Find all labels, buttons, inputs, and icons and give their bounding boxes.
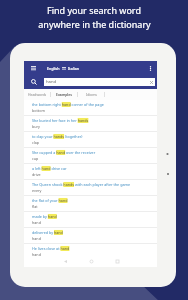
staticText: Headwords [28, 92, 47, 97]
button[interactable]: She buried her face in her hands [24, 116, 157, 132]
button[interactable]: He lives close at hand [24, 244, 157, 256]
button[interactable]: Home [78, 256, 104, 267]
staticText: delivered by hand [32, 230, 63, 235]
staticText: hand [46, 79, 57, 85]
button[interactable]: Search [24, 75, 44, 89]
staticText: the flat of your hand [32, 198, 68, 203]
staticText: made by hand [32, 214, 57, 219]
button[interactable]: Back [52, 256, 78, 267]
button[interactable]: Recent apps [104, 256, 130, 267]
staticText: He lives close at hand [32, 246, 70, 251]
button[interactable]: the bottom right hand corner of the page [24, 100, 157, 116]
staticText: Find your search word [47, 4, 141, 16]
button[interactable]: Headwords [24, 89, 51, 100]
staticText: a left hand drive car [32, 166, 67, 171]
staticText: The Queen shook hands with each player a… [32, 182, 131, 187]
staticText: flat [32, 204, 38, 209]
button[interactable]: She cupped a hand over the receiver [24, 148, 157, 164]
staticText: hand [32, 252, 41, 256]
staticText: anywhere in the dictionary [38, 18, 151, 30]
button[interactable]: a left hand drive car [24, 164, 157, 180]
button[interactable]: Examples [51, 89, 78, 100]
staticText: hand [32, 236, 41, 241]
button[interactable]: to clap your hands (together) [24, 132, 157, 148]
staticText: bottom [32, 108, 45, 113]
staticText: the bottom right hand corner of the page [32, 102, 104, 107]
button[interactable]: made by hand [24, 212, 157, 228]
staticText: Examples [56, 92, 73, 97]
staticText: every [32, 188, 42, 193]
button[interactable]: hand [44, 78, 155, 86]
button[interactable]: delivered by hand [24, 228, 157, 244]
button[interactable]: Clear query [147, 78, 155, 86]
button[interactable]: Open navigation menu [26, 61, 40, 75]
staticText: clap [32, 140, 40, 145]
staticText: Italian [68, 66, 79, 71]
button[interactable]: Idioms [78, 89, 105, 100]
staticText: drive [32, 172, 41, 177]
staticText: Idioms [86, 92, 97, 97]
staticText: hand [32, 220, 41, 225]
button[interactable]: The Queen shook hands with each player a… [24, 180, 157, 196]
staticText: bury [32, 124, 40, 129]
staticText: She cupped a hand over the receiver [32, 150, 96, 155]
staticText: She buried her face in her hands [32, 118, 89, 123]
button[interactable]: English [47, 61, 79, 75]
staticText: English [47, 66, 60, 71]
button[interactable]: More options [143, 61, 157, 75]
button[interactable]: the flat of your hand [24, 196, 157, 212]
staticText: to clap your hands (together) [32, 134, 83, 139]
staticText: cup [32, 156, 39, 161]
